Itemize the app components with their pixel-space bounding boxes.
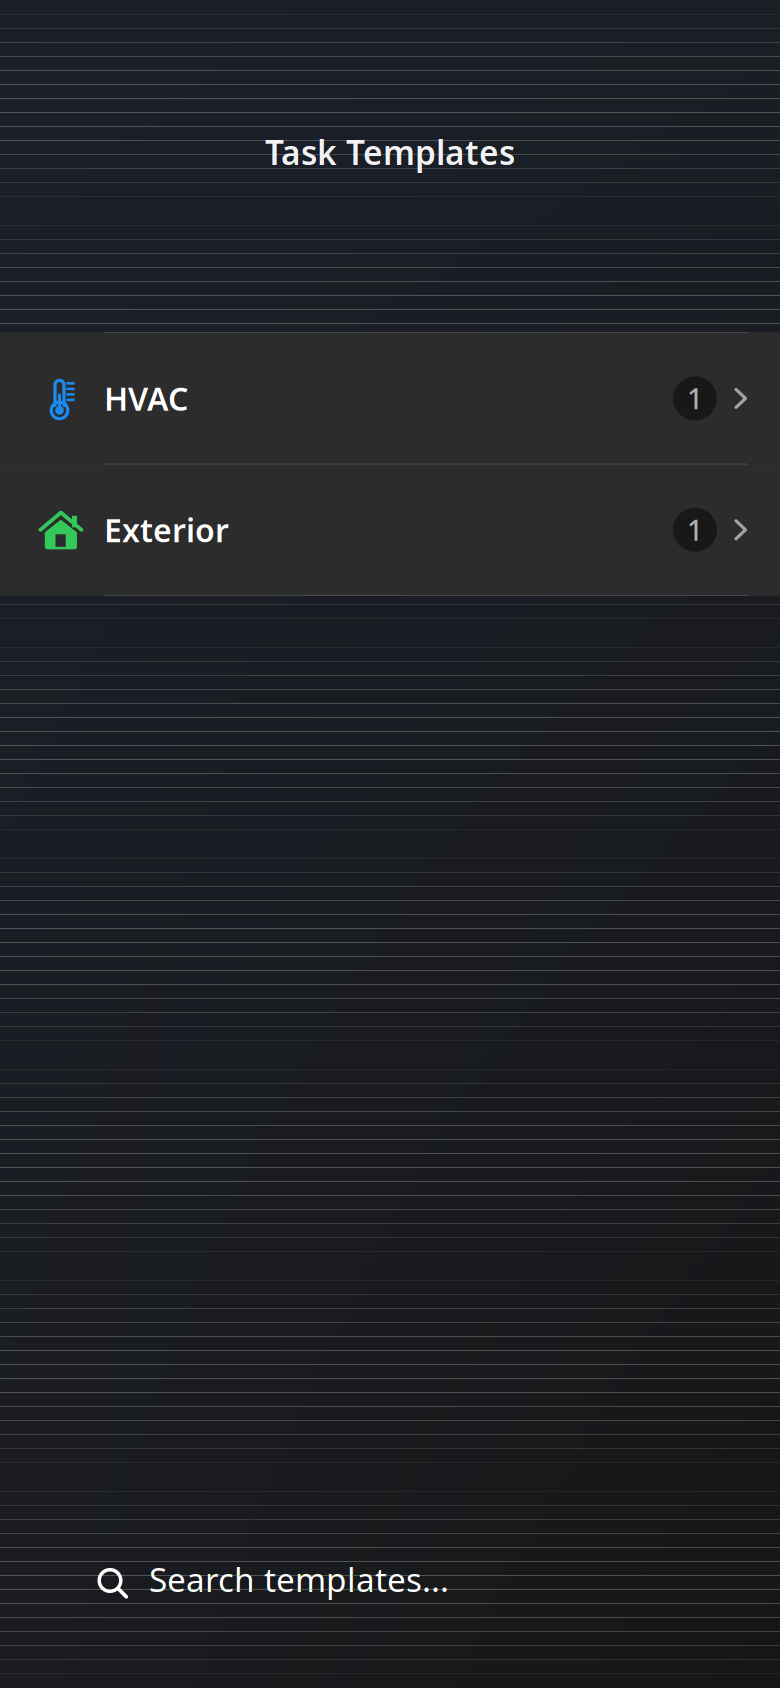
button[interactable]: Search templates (0, 1544, 780, 1614)
button[interactable]: HVAC (0, 333, 780, 463)
staticText: Task Templates (265, 130, 515, 174)
staticText: Search templates... (149, 1557, 449, 1601)
button[interactable]: Exterior (0, 465, 780, 595)
staticText: HVAC (104, 377, 188, 420)
staticText: 1 (687, 380, 703, 417)
staticText: Exterior (104, 509, 229, 551)
staticText: 1 (687, 511, 703, 548)
